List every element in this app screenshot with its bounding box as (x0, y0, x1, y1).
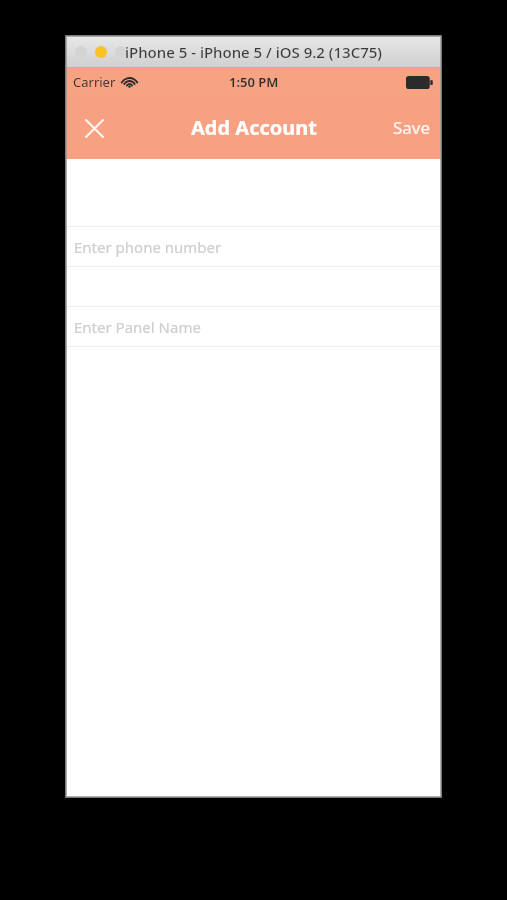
button[interactable]: Minimize (95, 46, 107, 58)
staticText: Enter phone number (74, 237, 222, 257)
button[interactable]: Save (383, 106, 441, 149)
button[interactable]: Close (70, 104, 118, 152)
button[interactable]: Close (75, 46, 87, 58)
staticText: 1:50 PM (229, 73, 279, 91)
staticText: iPhone 5 - iPhone 5 / iOS 9.2 (13C75) (125, 42, 383, 62)
button[interactable]: Enter phone number (66, 227, 441, 266)
staticText: Enter Panel Name (74, 317, 201, 337)
button[interactable]: Enter Panel Name (66, 307, 441, 346)
button[interactable]: Zoom (115, 46, 127, 58)
staticText: Save (393, 116, 431, 139)
staticText: Add Account (191, 114, 317, 141)
staticText: Carrier (73, 73, 116, 91)
